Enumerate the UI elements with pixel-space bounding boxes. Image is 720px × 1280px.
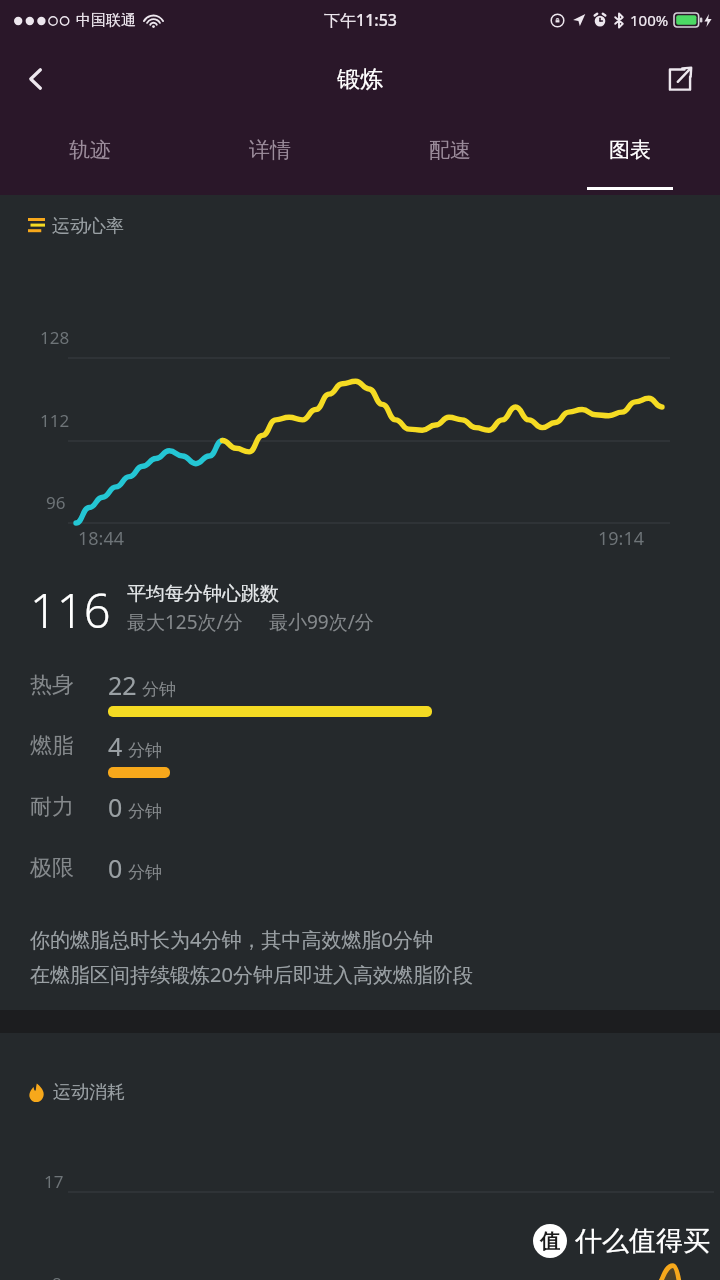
- staticText: 什么值得买: [575, 1224, 710, 1258]
- staticText: 配速: [429, 137, 471, 163]
- staticText: 19:14: [598, 526, 645, 551]
- staticText: 18:44: [78, 526, 125, 551]
- button[interactable]: Share: [654, 53, 706, 105]
- staticText: 在燃脂区间持续锻炼20分钟后即进入高效燃脂阶段: [30, 961, 473, 988]
- staticText: 详情: [249, 137, 291, 163]
- staticText: 运动心率: [52, 215, 124, 238]
- staticText: 最小99次/分: [269, 609, 374, 635]
- button[interactable]: 配速: [360, 118, 540, 195]
- staticText: 下午11:53: [324, 9, 397, 31]
- staticText: 极限: [30, 854, 74, 882]
- staticText: 4: [108, 729, 123, 763]
- staticText: 0: [108, 790, 123, 824]
- staticText: 分钟: [142, 679, 176, 700]
- staticText: 100%: [630, 10, 669, 30]
- staticText: 值: [540, 1229, 560, 1254]
- staticText: 轨迹: [69, 137, 111, 163]
- staticText: 运动消耗: [53, 1081, 125, 1104]
- staticText: 图表: [609, 137, 651, 163]
- staticText: 锻炼: [337, 65, 383, 94]
- staticText: 分钟: [128, 801, 162, 822]
- staticText: 22: [108, 668, 137, 702]
- staticText: 8: [52, 1272, 62, 1280]
- staticText: 平均每分钟心跳数: [127, 582, 279, 606]
- staticText: 中国联通: [76, 11, 136, 30]
- staticText: 分钟: [128, 740, 162, 761]
- button[interactable]: 耐力: [0, 784, 720, 845]
- staticText: 112: [40, 409, 70, 432]
- staticText: 96: [46, 491, 66, 514]
- button[interactable]: Back: [8, 51, 64, 107]
- button[interactable]: 轨迹: [0, 118, 180, 195]
- staticText: 燃脂: [30, 732, 74, 760]
- staticText: 热身: [30, 671, 74, 699]
- staticText: 最大125次/分: [127, 609, 243, 635]
- staticText: 116: [30, 578, 111, 642]
- staticText: 你的燃脂总时长为4分钟，其中高效燃脂0分钟: [30, 926, 433, 953]
- button[interactable]: 燃脂: [0, 723, 720, 784]
- button[interactable]: 极限: [0, 845, 720, 906]
- staticText: 128: [40, 326, 70, 349]
- staticText: 0: [108, 851, 123, 885]
- staticText: 耐力: [30, 793, 74, 821]
- staticText: 17: [44, 1170, 64, 1193]
- button[interactable]: 热身: [0, 662, 720, 723]
- staticText: 分钟: [128, 862, 162, 883]
- button[interactable]: 图表: [540, 118, 720, 195]
- button[interactable]: 详情: [180, 118, 360, 195]
